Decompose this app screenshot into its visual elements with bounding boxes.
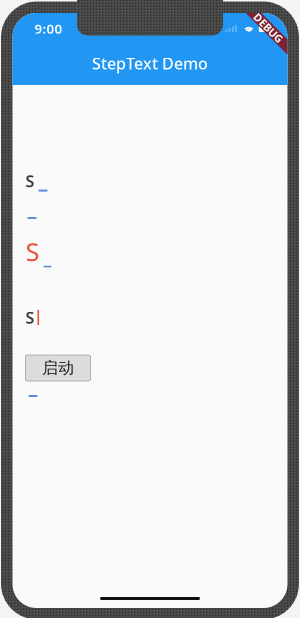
staticText: S bbox=[25, 170, 34, 192]
staticText: S bbox=[25, 235, 39, 268]
staticText: StepText Demo bbox=[92, 53, 208, 74]
staticText: 9:00 bbox=[34, 20, 62, 37]
staticText: DEBUG bbox=[250, 21, 287, 35]
staticText: 启动 bbox=[42, 358, 74, 378]
staticText: S bbox=[25, 307, 34, 328]
button[interactable]: 启动 bbox=[25, 355, 90, 381]
